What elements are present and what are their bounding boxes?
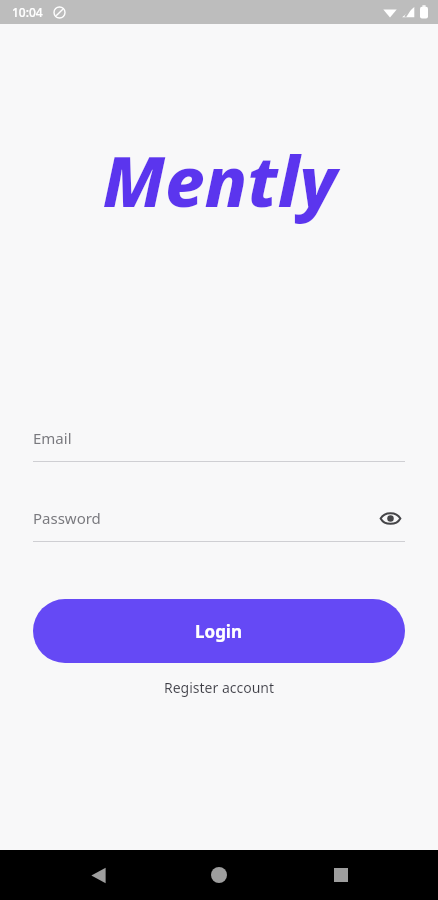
button[interactable]: Recent apps bbox=[317, 851, 365, 899]
button[interactable]: Register account bbox=[152, 672, 287, 703]
button[interactable]: Email bbox=[33, 414, 405, 461]
button[interactable]: Show password bbox=[375, 503, 405, 533]
staticText: Password bbox=[33, 508, 101, 528]
staticText: Mently bbox=[102, 132, 337, 227]
button[interactable]: Back bbox=[74, 851, 122, 899]
button[interactable]: Password bbox=[33, 494, 405, 541]
staticText: Email bbox=[33, 428, 72, 448]
button[interactable]: Login bbox=[33, 599, 405, 663]
button[interactable]: Home bbox=[195, 851, 243, 899]
staticText: Login bbox=[195, 620, 243, 643]
staticText: 10:04 bbox=[12, 4, 43, 20]
staticText: Register account bbox=[164, 678, 275, 697]
